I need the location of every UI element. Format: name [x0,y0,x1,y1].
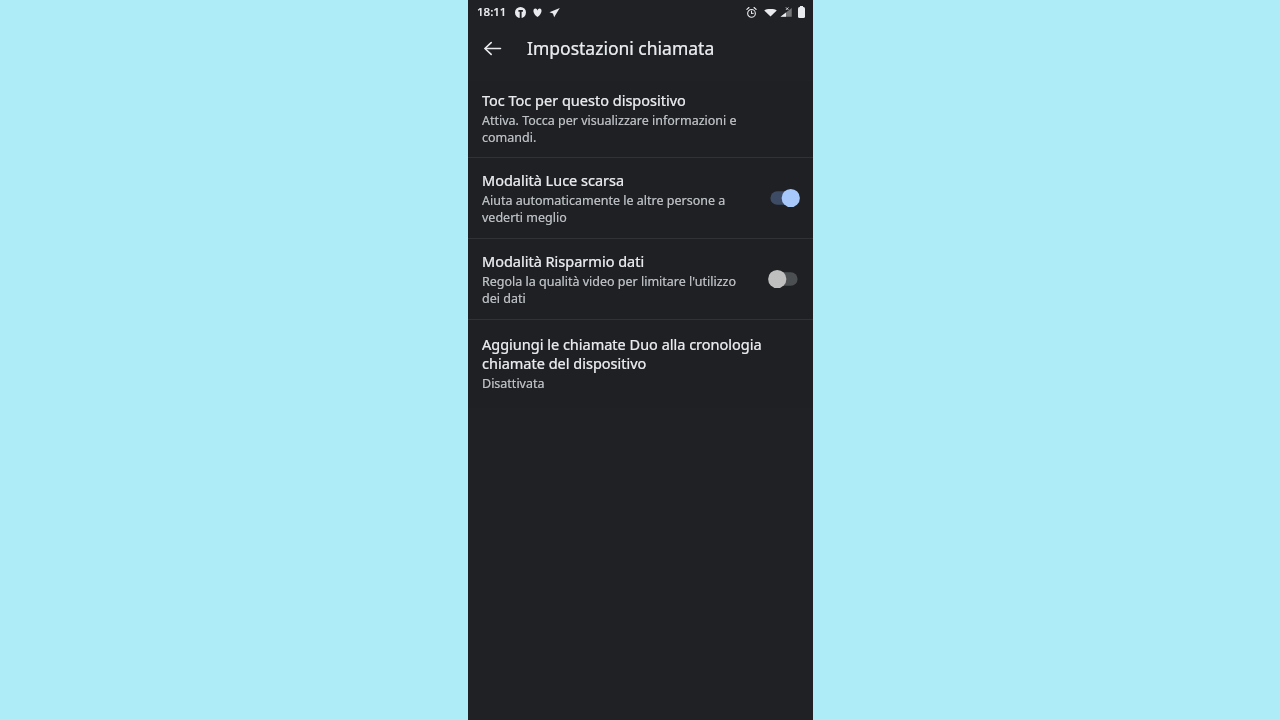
staticText: Aiuta automaticamente le altre persone a… [482,192,755,225]
staticText: Modalità Risparmio dati [482,251,645,271]
button[interactable]: Aggiungi le chiamate Duo alla cronologia… [468,320,813,408]
button[interactable]: Toc Toc per questo dispositivo [468,81,813,157]
button[interactable]: Attiva opzione [767,186,801,210]
staticText: Impostazioni chiamata [527,36,715,60]
staticText: Toc Toc per questo dispositivo [482,90,686,110]
staticText: Disattivata [482,375,545,392]
staticText: Regola la qualità video per limitare l'u… [482,273,755,306]
staticText: Attiva. Tocca per visualizzare informazi… [482,112,791,145]
staticText: Modalità Luce scarsa [482,170,625,190]
staticText: Aggiungi le chiamate Duo alla cronologia… [482,334,791,373]
button[interactable]: Modalità Luce scarsa [468,158,813,238]
staticText: 18:11 [477,4,507,20]
button[interactable]: Indietro [474,30,510,66]
button[interactable]: Modalità Risparmio dati [468,239,813,319]
button[interactable]: Disattiva opzione [767,267,801,291]
